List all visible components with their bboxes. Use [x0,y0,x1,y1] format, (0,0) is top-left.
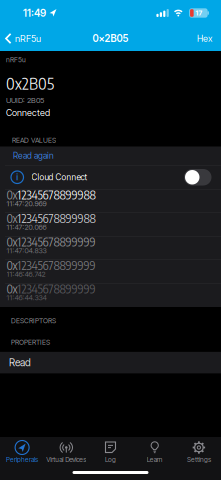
staticText: 11:46:46.742 [6,270,45,278]
staticText: 0x [6,187,17,202]
staticText: Hex [197,33,212,44]
staticText: Connected [6,107,50,118]
button[interactable]: Log [88,440,133,464]
staticText: 0x [6,211,17,226]
staticText: nRF5u [15,33,41,44]
staticText: Settings [187,455,211,464]
staticText: 11:47:20.969 [6,199,46,208]
staticText: 11:47:04.833 [6,246,46,255]
staticText: 0x2B05 [92,32,128,44]
staticText: DESCRIPTORS [11,316,56,325]
staticText: Learn [147,455,163,464]
button[interactable]: Peripherals [0,440,44,464]
staticText: 12345678899988 [17,211,95,226]
button[interactable]: Hex [197,33,221,44]
button[interactable]: Learn [133,440,177,464]
staticText: 0x [6,234,17,249]
staticText: 0x [6,281,17,296]
button[interactable]: Cloud Connect info [0,171,23,183]
button[interactable]: Virtual Devices [44,440,88,464]
staticText: PROPERTIES [11,338,50,346]
staticText: Read [9,356,31,369]
staticText: 12345678899999 [17,281,95,296]
staticText: 12345678899999 [17,258,95,273]
staticText: 12345678899988 [17,187,95,202]
staticText: 11:49 [23,7,46,19]
staticText: Read again [13,151,54,161]
staticText: UUID: 2B05 [6,95,44,105]
button[interactable]: Read again [0,146,221,165]
staticText: 0x [6,258,17,273]
staticText: 11:46:44.334 [6,293,46,302]
staticText: Cloud Connect [31,172,87,182]
staticText: 0x2B05 [6,73,54,93]
staticText: READ VALUES [12,136,56,144]
staticText: Virtual Devices [46,455,86,464]
staticText: i [16,172,18,182]
staticText: 12345678899999 [17,234,95,249]
staticText: 17 [195,9,202,17]
button[interactable]: Settings [177,440,221,464]
button[interactable]: Back [0,33,41,44]
button[interactable]: Cloud Connect toggle [184,169,211,185]
staticText: Peripherals [6,455,38,464]
staticText: Log [105,455,116,464]
staticText: 11:47:20.066 [6,223,46,231]
staticText: nRF5u [6,55,26,64]
